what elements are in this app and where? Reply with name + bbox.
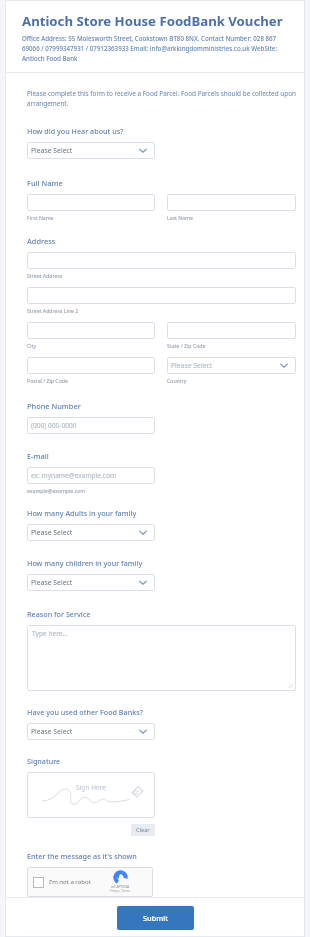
button[interactable]: Select option [27,723,155,740]
button[interactable]: (000) 000-0000 [27,417,155,434]
button[interactable]: Clear [131,824,155,836]
staticText: Privacy - Terms [110,889,130,893]
staticText: Clear [136,826,150,834]
button[interactable]: I'm not a robot reCAPTCHA [27,867,153,897]
staticText: Postal / Zip Code [27,377,68,384]
button[interactable] [27,287,296,304]
button[interactable] [27,322,155,339]
staticText: E-mail [27,451,49,461]
staticText: Antioch Store House FoodBank Voucher [22,12,283,30]
staticText: Please Select [31,528,73,537]
staticText: First Name [27,214,54,221]
staticText: Sign Here [76,783,107,792]
staticText: City [27,342,37,349]
button[interactable] [27,357,155,374]
button[interactable] [27,194,155,211]
staticText: Street Address Line 2 [27,307,79,314]
button[interactable]: ex: myname@example.com [27,467,155,484]
staticText: Country [167,377,187,384]
staticText: Submit [143,913,169,923]
staticText: State / Zip Code [167,342,206,349]
staticText: How many children in your family [27,558,143,568]
staticText: Have you used other Food Banks? [27,707,143,717]
staticText: reCAPTCHA [111,884,130,889]
staticText: Please Select [171,361,213,370]
staticText: Please Select [31,727,73,736]
staticText: Reason for Service [27,609,91,619]
staticText: ex: myname@example.com [31,471,117,480]
button[interactable]: Select option [27,142,155,159]
staticText: Address [27,236,56,246]
staticText: Please complete this form to receive a F… [27,89,296,108]
staticText: Last Name [167,214,193,221]
button[interactable]: Select option [27,574,155,591]
staticText: How many Adults in your family [27,508,137,518]
button[interactable]: Select option [167,357,296,374]
button[interactable]: Select option [27,524,155,541]
button[interactable]: Submit [117,906,194,930]
staticText: (000) 000-0000 [31,421,77,430]
staticText: Street Address [27,272,63,279]
staticText: How did you Hear about us? [27,126,124,136]
button[interactable] [167,322,296,339]
button[interactable] [167,194,296,211]
button[interactable]: Signature pad [27,772,155,818]
staticText: I'm not a robot [49,878,91,886]
staticText: Full Name [27,178,63,188]
staticText: Phone Number [27,401,81,411]
button[interactable]: Type here... [27,625,296,691]
button[interactable] [27,252,296,269]
staticText: Please Select [31,146,73,155]
staticText: Type here... [32,629,68,638]
staticText: Signature [27,756,61,766]
staticText: Office Address: 55 Molesworth Street, Co… [22,34,288,62]
staticText: example@example.com [27,487,86,494]
staticText: Enter the message as it's shown [27,851,137,861]
staticText: Please Select [31,578,73,587]
